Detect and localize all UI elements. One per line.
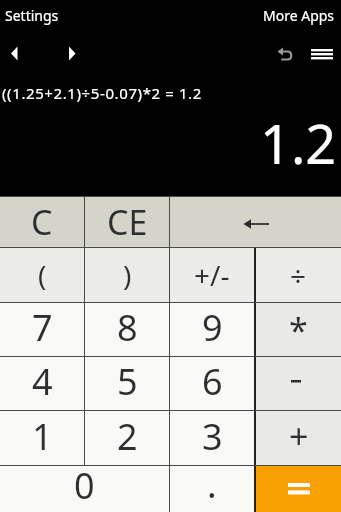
button[interactable] [308, 44, 336, 64]
button[interactable]: More Apps [259, 2, 339, 29]
staticText: 1 [32, 412, 53, 461]
staticText: 3 [202, 412, 223, 461]
staticText: C [31, 199, 53, 245]
staticText: 2 [117, 412, 138, 461]
button[interactable]: 4 [0, 357, 84, 410]
staticText: CE [107, 199, 148, 245]
staticText: * [289, 307, 308, 353]
button[interactable]: 6 [170, 357, 254, 410]
staticText: 0 [74, 461, 95, 507]
staticText: +/- [194, 256, 230, 294]
button[interactable] [274, 45, 296, 67]
button[interactable]: 1 [0, 411, 84, 465]
button[interactable]: 2 [85, 411, 169, 465]
staticText: + [289, 413, 309, 459]
button[interactable]: ( [0, 248, 84, 302]
staticText: 8 [117, 303, 138, 352]
staticText: ( [38, 256, 47, 294]
button[interactable]: 0 [0, 466, 169, 512]
button[interactable]: * [256, 303, 341, 356]
button[interactable]: +/- [170, 248, 254, 302]
button[interactable]: ) [85, 248, 169, 302]
staticText: 6 [202, 357, 223, 406]
button[interactable]: . [170, 466, 254, 512]
staticText: More Apps [263, 6, 335, 25]
button[interactable]: + [256, 411, 341, 465]
button[interactable]: 8 [85, 303, 169, 356]
staticText: 1.2 [260, 106, 337, 180]
staticText: . [207, 460, 217, 506]
button[interactable]: C [0, 197, 84, 247]
staticText: ) [123, 256, 132, 294]
button[interactable]: 9 [170, 303, 254, 356]
button[interactable]: Settings [1, 2, 63, 29]
button[interactable] [170, 197, 341, 247]
button[interactable] [256, 466, 341, 512]
button[interactable]: 5 [85, 357, 169, 410]
button[interactable]: CE [85, 197, 169, 247]
staticText: 4 [32, 357, 53, 406]
staticText: 7 [32, 303, 53, 352]
staticText: 5 [117, 357, 138, 406]
button[interactable] [62, 44, 80, 62]
staticText: Settings [5, 6, 59, 25]
button[interactable]: 7 [0, 303, 84, 356]
button[interactable]: ÷ [256, 248, 341, 302]
staticText: 9 [202, 303, 223, 352]
staticText: ÷ [290, 256, 307, 294]
staticText: ((1.25+2.1)÷5-0.07)*2 = 1.2 [2, 83, 202, 103]
button[interactable] [6, 44, 24, 62]
button[interactable] [256, 357, 341, 410]
button[interactable]: 3 [170, 411, 254, 465]
